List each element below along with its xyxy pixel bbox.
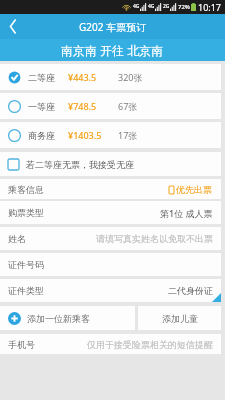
staticText: 320张 <box>118 71 143 83</box>
staticText: ¥443.5 <box>68 71 104 83</box>
button[interactable]: 若二等座无票，我接受无座 <box>0 152 221 176</box>
staticText: 手机号 <box>8 339 35 350</box>
button[interactable]: 添加儿童 <box>138 306 221 330</box>
staticText: ¥748.5 <box>68 100 104 112</box>
staticText: 南京南 开往 北京南 <box>61 42 164 58</box>
staticText: 第1位 成人票 <box>160 207 213 219</box>
staticText: 4G <box>148 3 155 10</box>
button[interactable]: 商务座 <box>0 122 221 148</box>
staticText: 72% <box>178 3 190 11</box>
button[interactable]: 二等座 <box>0 64 221 90</box>
staticText: 证件类型 <box>8 285 44 296</box>
staticText: 优先出票 <box>176 184 212 195</box>
staticText: 购票类型 <box>8 207 44 218</box>
button[interactable]: 添加一位新乘客 <box>0 306 135 330</box>
staticText: 10:17 <box>198 1 222 13</box>
button[interactable]: 购票类型 <box>0 201 221 224</box>
staticText: 添加一位新乘客 <box>27 313 90 324</box>
staticText: 仅用于接受险票相关的短信提醒 <box>87 339 213 350</box>
staticText: 二等座 <box>28 72 62 83</box>
staticText: 67张 <box>118 100 138 112</box>
button[interactable]: 一等座 <box>0 93 221 119</box>
staticText: 添加儿童 <box>162 313 198 324</box>
staticText: 姓名 <box>8 233 26 244</box>
button[interactable]: 证件号码 <box>0 253 221 276</box>
staticText: 证件号码 <box>8 259 44 270</box>
button[interactable]: 证件类型 <box>0 279 221 302</box>
button[interactable]: 优先出票 <box>168 184 213 195</box>
staticText: 乘客信息 <box>8 184 44 195</box>
staticText: G202 车票预订 <box>79 20 147 34</box>
staticText: 请填写真实姓名以免取不出票 <box>96 233 213 244</box>
staticText: 二代身份证 <box>168 285 213 296</box>
button[interactable]: 姓名 <box>0 227 221 250</box>
staticText: 商务座 <box>28 130 62 141</box>
button[interactable]: Back <box>0 14 26 39</box>
staticText: ¥1403.5 <box>68 129 104 141</box>
staticText: 2G <box>163 3 170 10</box>
staticText: 17张 <box>118 129 138 141</box>
button[interactable]: 手机号 <box>0 334 221 354</box>
staticText: 一等座 <box>28 101 62 112</box>
staticText: 若二等座无票，我接受无座 <box>26 159 134 170</box>
staticText: 4G <box>133 3 140 10</box>
